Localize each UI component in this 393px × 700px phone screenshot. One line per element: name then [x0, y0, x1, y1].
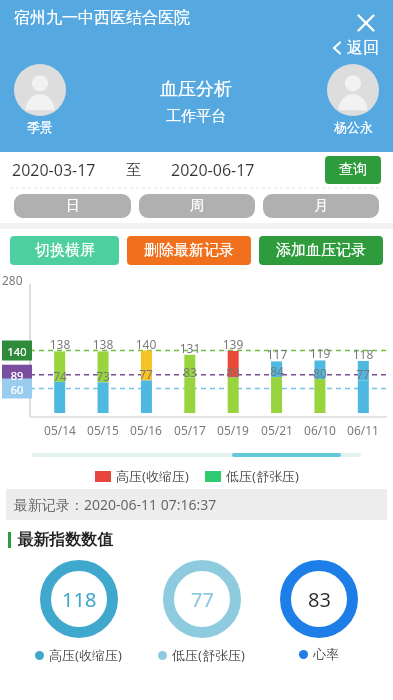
staticText: 138	[89, 336, 117, 352]
staticText: 131	[176, 340, 204, 356]
staticText: 05/15	[82, 422, 124, 438]
staticText: 280	[2, 272, 23, 288]
staticText: 140	[2, 344, 32, 359]
button[interactable]: 切换横屏	[10, 236, 119, 265]
staticText: 05/17	[169, 422, 211, 438]
staticText: 05/19	[212, 422, 254, 438]
staticText: 高压(收缩压)	[116, 467, 189, 485]
staticText: 83	[176, 364, 204, 380]
staticText: 83	[308, 586, 331, 613]
button[interactable]: 查询	[325, 156, 381, 184]
staticText: 80	[306, 365, 334, 381]
staticText: 117	[263, 346, 291, 362]
staticText: 最新指数数值	[17, 530, 113, 550]
button[interactable]: 周	[139, 194, 255, 218]
staticText: 至	[126, 161, 141, 180]
staticText: 杨公永	[334, 119, 373, 135]
staticText: 查询	[339, 161, 367, 179]
staticText: 心率	[313, 646, 339, 662]
staticText: 返回	[347, 38, 379, 58]
button[interactable]: 添加血压记录	[259, 236, 383, 265]
staticText: 74	[46, 368, 74, 384]
button[interactable]: 2020-06-17	[171, 159, 255, 181]
button[interactable]: Close	[349, 6, 383, 40]
staticText: 06/10	[299, 422, 341, 438]
staticText: 日	[66, 197, 80, 215]
staticText: 139	[219, 336, 247, 352]
staticText: 118	[62, 586, 97, 613]
staticText: 60	[2, 382, 32, 397]
staticText: 84	[263, 363, 291, 379]
button[interactable]: 月	[263, 194, 379, 218]
staticText: 77	[191, 586, 214, 613]
staticText: 月	[314, 197, 328, 215]
staticText: 添加血压记录	[276, 241, 366, 260]
staticText: 季景	[27, 119, 53, 135]
staticText: 06/11	[342, 422, 384, 438]
button[interactable]: 2020-03-17	[12, 159, 96, 181]
staticText: 77	[132, 366, 160, 382]
staticText: 最新记录：2020-06-11 07:16:37	[14, 495, 217, 514]
staticText: 血压分析	[160, 78, 232, 101]
staticText: 删除最新记录	[144, 241, 234, 260]
staticText: 05/14	[39, 422, 81, 438]
button[interactable]: 日	[14, 194, 131, 218]
staticText: 宿州九一中西医结合医院	[14, 8, 190, 28]
staticText: 89	[2, 368, 32, 383]
staticText: 118	[349, 346, 377, 362]
staticText: 119	[306, 345, 334, 361]
button[interactable]: 删除最新记录	[127, 236, 251, 265]
staticText: 138	[46, 336, 74, 352]
staticText: 低压(舒张压)	[172, 646, 245, 664]
staticText: 05/16	[125, 422, 167, 438]
staticText: 73	[89, 368, 117, 384]
staticText: 77	[349, 366, 377, 382]
staticText: 高压(收缩压)	[49, 646, 122, 664]
staticText: 切换横屏	[35, 241, 95, 260]
staticText: 140	[132, 336, 160, 352]
staticText: 05/21	[256, 422, 298, 438]
staticText: 低压(舒张压)	[226, 467, 299, 485]
staticText: 周	[190, 197, 204, 215]
button[interactable]: 返回	[331, 38, 379, 58]
staticText: 工作平台	[166, 107, 226, 126]
staticText: 83	[219, 364, 247, 380]
